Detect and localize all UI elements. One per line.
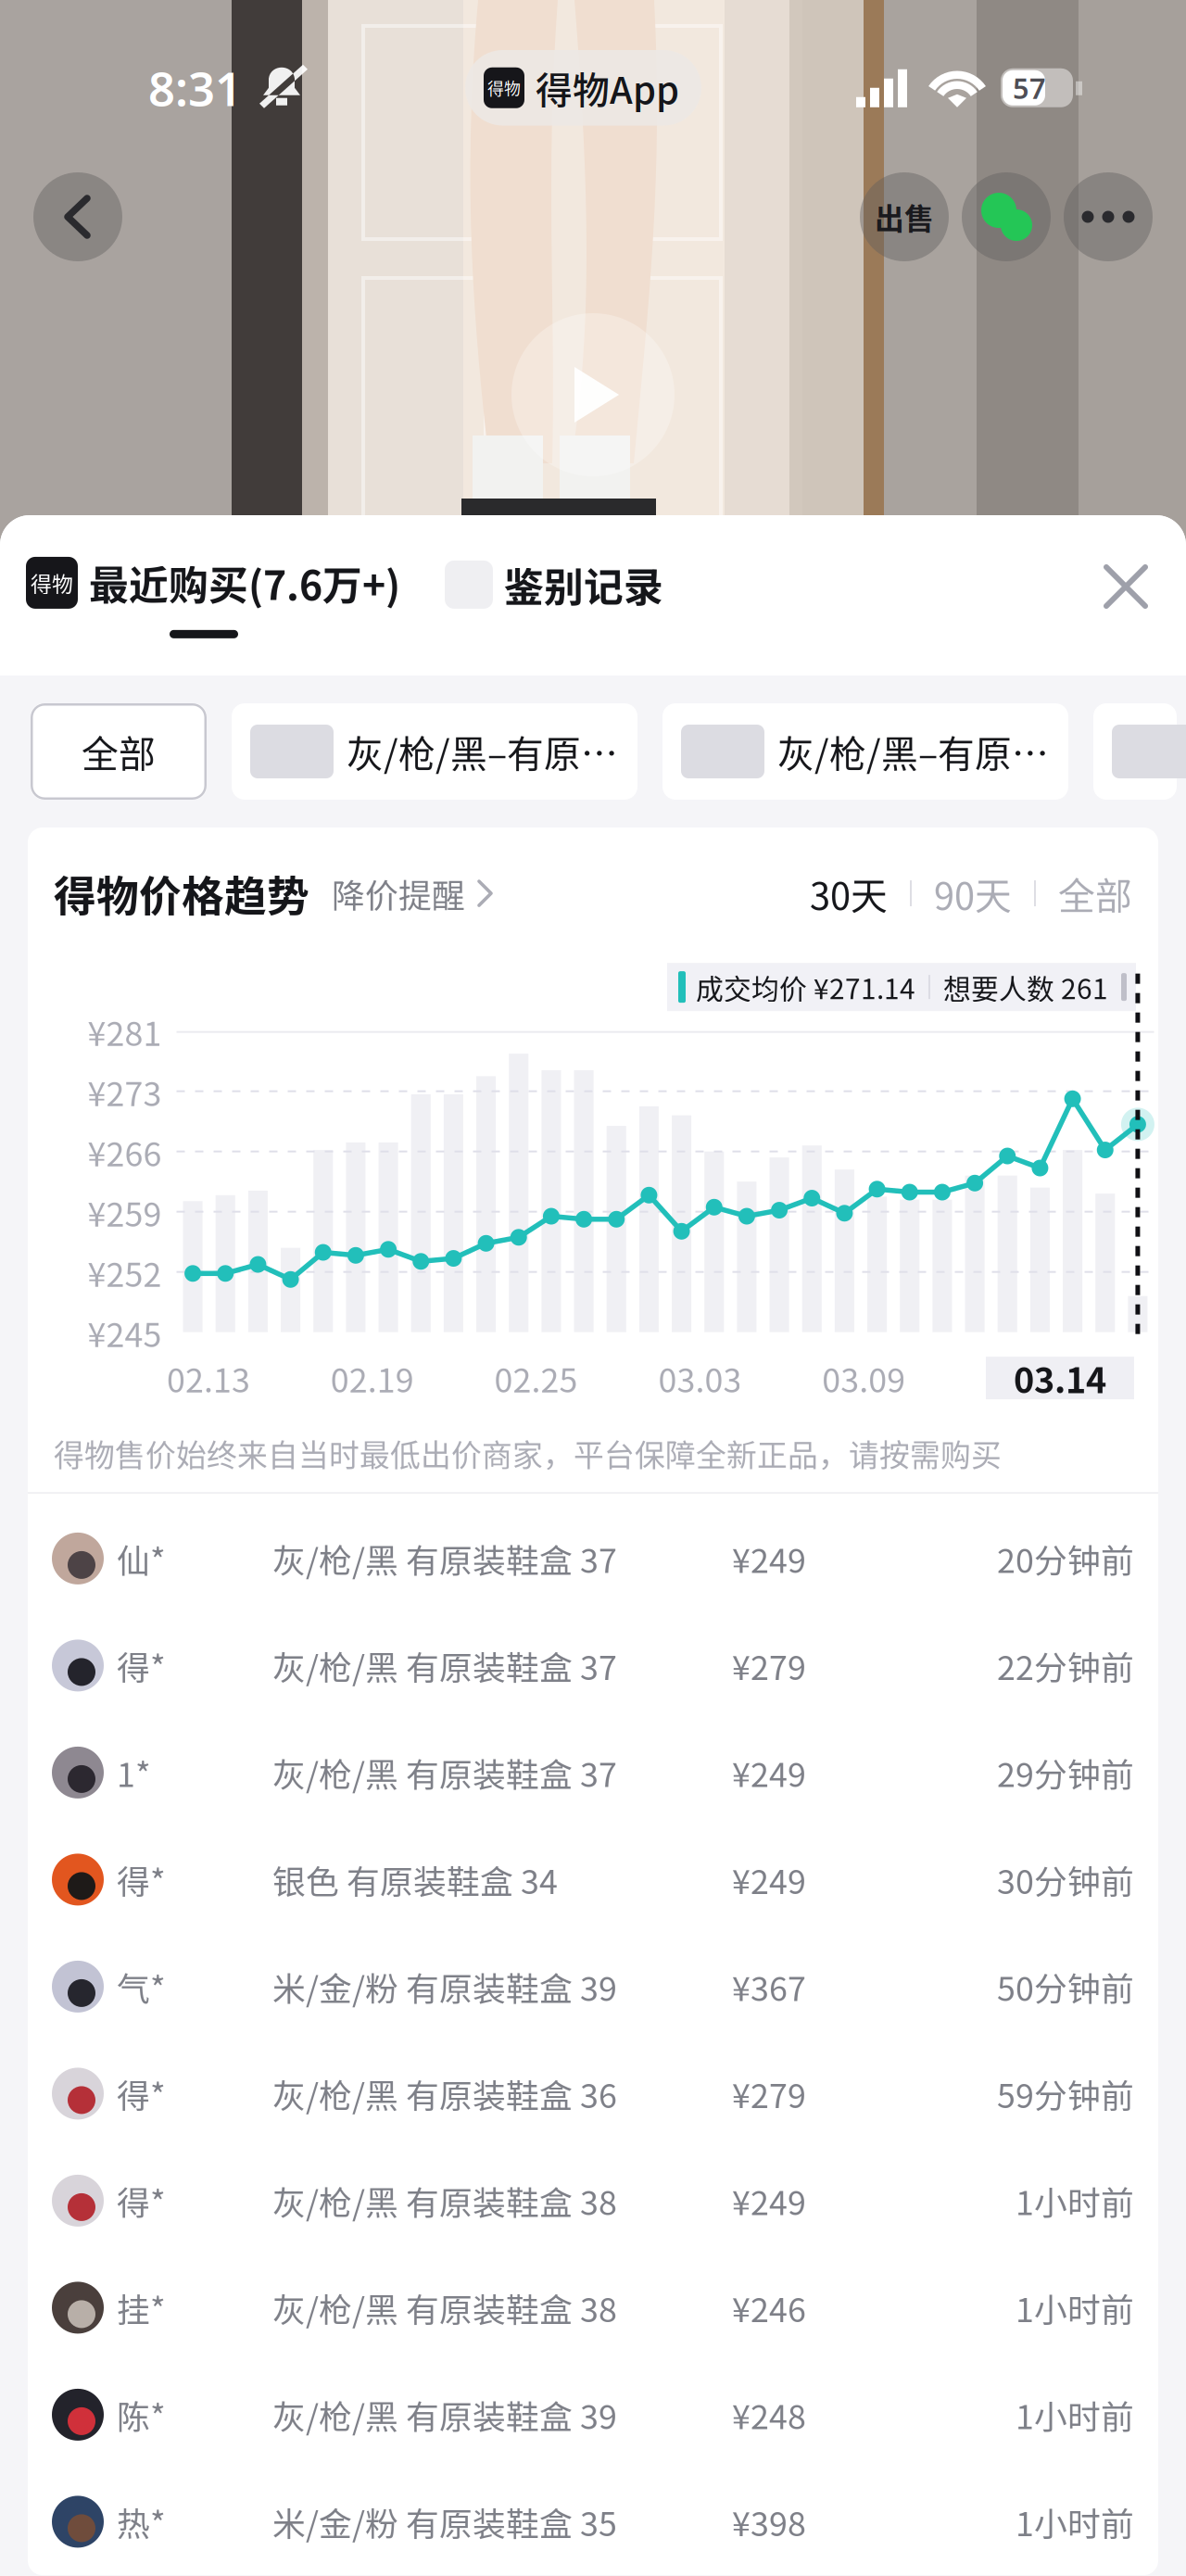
staticText: ¥246 (732, 2284, 806, 2332)
staticText: 灰/枪/黑 有原装鞋盒 36 (272, 2070, 617, 2118)
staticText: ¥273 (88, 1068, 162, 1116)
staticText: 灰/枪/黑 有原装鞋盒 37 (272, 1749, 617, 1797)
button[interactable]: 灰/枪/黑–有原… (662, 703, 1068, 800)
staticText: 02.13 (167, 1354, 250, 1402)
staticText: 1小时前 (1016, 2391, 1134, 2439)
staticText: 29分钟前 (997, 1749, 1134, 1797)
staticText: ¥279 (732, 1642, 806, 1690)
button[interactable]: Sell (860, 172, 949, 261)
button[interactable]: 得* (28, 1612, 1158, 1719)
staticText: 30分钟前 (997, 1856, 1134, 1904)
staticText: 1* (117, 1749, 151, 1797)
staticText: 1小时前 (1016, 2284, 1134, 2332)
staticText: 灰/枪/黑 有原装鞋盒 38 (272, 2284, 617, 2332)
button[interactable]: Close (1095, 556, 1156, 617)
staticText: 米/金/粉 有原装鞋盒 39 (272, 1963, 617, 2011)
staticText: 02.19 (331, 1354, 414, 1402)
staticText: 气* (117, 1963, 166, 2011)
staticText: 30天 (810, 867, 888, 920)
staticText: 90天 (934, 867, 1012, 920)
staticText: 灰/枪/黑 有原装鞋盒 37 (272, 1642, 617, 1690)
staticText: 得物售价始终来自当时最低出价商家，平台保障全新正品，请按需购买 (54, 1431, 1002, 1475)
staticText: 得物 (487, 76, 521, 100)
staticText: ¥249 (732, 1534, 806, 1582)
staticText: 得物 (31, 567, 73, 598)
staticText: ¥245 (88, 1309, 162, 1357)
staticText: ¥249 (732, 2177, 806, 2225)
staticText: 得* (117, 1642, 166, 1690)
staticText: 灰/枪/黑 有原装鞋盒 37 (272, 1534, 617, 1582)
staticText: 1小时前 (1016, 2177, 1134, 2225)
staticText: 成交均价 ¥271.14 (696, 967, 915, 1007)
staticText: 得物App (536, 61, 679, 114)
staticText: 59分钟前 (997, 2070, 1134, 2118)
button[interactable]: 挂* (28, 2254, 1158, 2361)
button[interactable]: 30天 (810, 867, 888, 920)
button[interactable]: 仙* (28, 1505, 1158, 1612)
staticText: 得物价格趋势 (54, 863, 309, 924)
staticText: ¥249 (732, 1749, 806, 1797)
staticText: 灰/枪/黑 有原装鞋盒 38 (272, 2177, 617, 2225)
staticText: 降价提醒 (332, 869, 465, 917)
staticText: 20分钟前 (997, 1534, 1134, 1582)
button[interactable]: Back (33, 172, 122, 261)
staticText: 灰/枪/黑–有原… (347, 725, 618, 778)
staticText: 得* (117, 2070, 166, 2118)
button[interactable]: 90天 (934, 867, 1012, 920)
button[interactable]: WeChat (962, 172, 1051, 261)
staticText: 陈* (117, 2391, 166, 2439)
staticText: 出售 (875, 196, 934, 238)
staticText: 想要人数 261 (943, 967, 1108, 1007)
staticText: 仙* (117, 1534, 166, 1582)
staticText: 得* (117, 2177, 166, 2225)
staticText: ¥281 (88, 1008, 162, 1056)
staticText: ¥398 (732, 2498, 806, 2546)
button[interactable]: 全部 (31, 703, 207, 800)
button[interactable]: 1* (28, 1719, 1158, 1826)
staticText: ¥367 (732, 1963, 806, 2011)
staticText: 全部 (82, 725, 156, 778)
staticText: 22分钟前 (997, 1642, 1134, 1690)
staticText: 灰/枪/黑–有原… (777, 725, 1049, 778)
staticText: 02.25 (494, 1354, 578, 1402)
staticText: 最近购买(7.6万+) (89, 554, 400, 611)
button[interactable] (1093, 703, 1177, 800)
staticText: 得* (117, 1856, 166, 1904)
staticText: 1小时前 (1016, 2498, 1134, 2546)
staticText: 03.09 (822, 1354, 905, 1402)
button[interactable]: 陈* (28, 2361, 1158, 2468)
button[interactable]: 得* (28, 2040, 1158, 2147)
staticText: 8:31 (148, 57, 242, 119)
button[interactable]: 得物 (26, 554, 400, 638)
staticText: ¥252 (88, 1248, 162, 1296)
button[interactable]: 鉴别记录 (400, 554, 663, 613)
staticText: 银色 有原装鞋盒 34 (272, 1856, 558, 1904)
staticText: 03.03 (658, 1354, 742, 1402)
staticText: 灰/枪/黑 有原装鞋盒 39 (272, 2391, 617, 2439)
button[interactable]: 得* (28, 1826, 1158, 1933)
staticText: ¥259 (88, 1188, 162, 1236)
staticText: 鉴别记录 (504, 556, 663, 613)
staticText: 米/金/粉 有原装鞋盒 35 (272, 2498, 617, 2546)
staticText: ¥248 (732, 2391, 806, 2439)
button[interactable]: 热* (28, 2468, 1158, 2575)
button[interactable]: 全部 (1058, 867, 1132, 920)
staticText: 50分钟前 (997, 1963, 1134, 2011)
staticText: 03.14 (1014, 1353, 1106, 1403)
button[interactable]: 灰/枪/黑–有原… (232, 703, 637, 800)
button[interactable]: 气* (28, 1933, 1158, 2040)
staticText: ¥279 (732, 2070, 806, 2118)
staticText: ¥266 (88, 1128, 162, 1176)
staticText: 热* (117, 2498, 166, 2546)
staticText: 57 (1013, 69, 1046, 107)
button[interactable]: More (1064, 172, 1153, 261)
button[interactable]: 降价提醒 (309, 869, 494, 917)
staticText: ¥249 (732, 1856, 806, 1904)
staticText: 挂* (117, 2284, 166, 2332)
staticText: 全部 (1058, 867, 1132, 920)
button[interactable]: 得* (28, 2147, 1158, 2254)
